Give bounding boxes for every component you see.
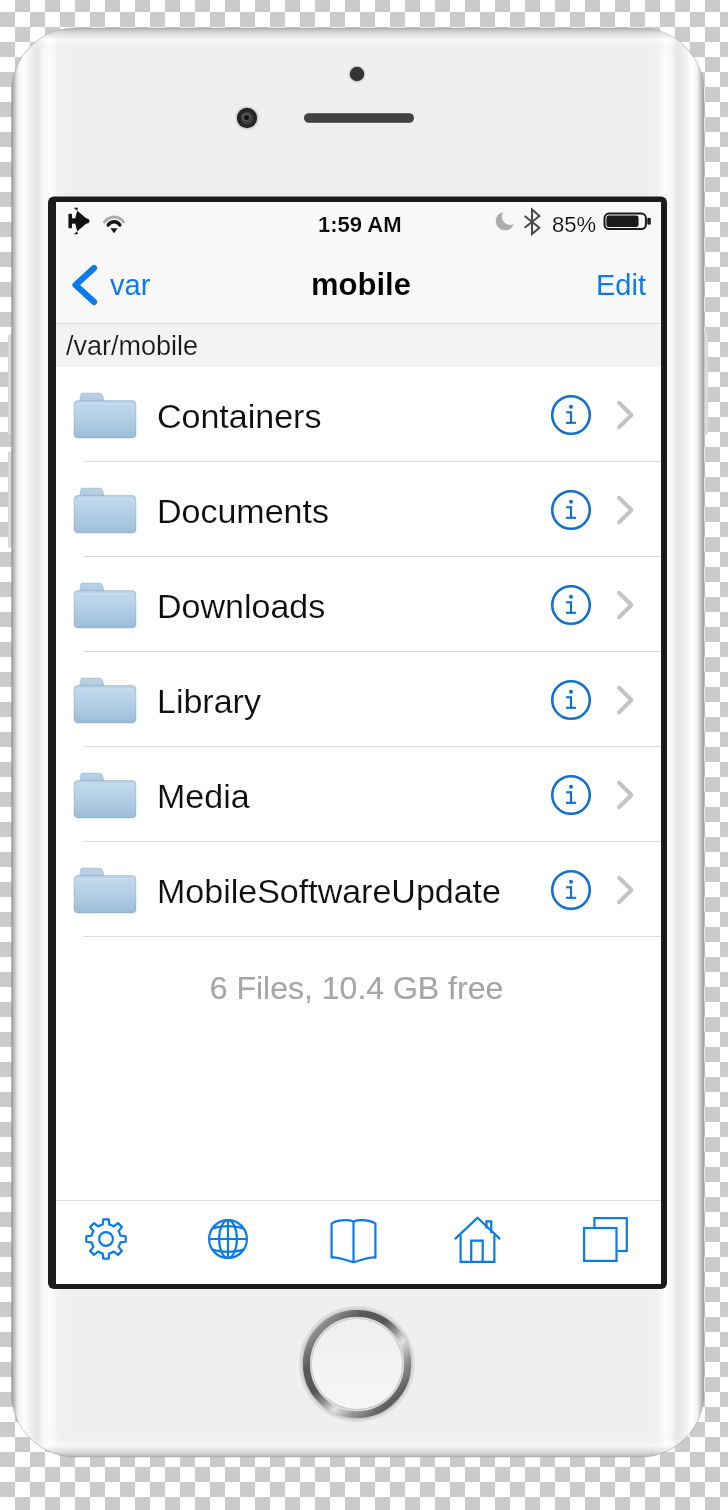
button[interactable]: Settings bbox=[74, 1200, 138, 1284]
button[interactable]: Media bbox=[56, 747, 661, 842]
button[interactable]: Info bbox=[544, 388, 598, 442]
staticText: Containers bbox=[157, 397, 322, 435]
staticText: Edit bbox=[596, 269, 646, 301]
staticText: 1:59 AM bbox=[318, 212, 402, 237]
staticText: MobileSoftwareUpdate bbox=[157, 872, 501, 910]
button[interactable]: Containers bbox=[56, 367, 661, 462]
staticText: Media bbox=[157, 777, 250, 815]
button[interactable]: Info bbox=[544, 768, 598, 822]
button[interactable]: Info bbox=[544, 863, 598, 917]
button[interactable]: Browser bbox=[196, 1200, 260, 1284]
staticText: Library bbox=[157, 682, 261, 720]
button[interactable]: Home bbox=[445, 1200, 509, 1284]
staticText: Downloads bbox=[157, 587, 326, 625]
button[interactable]: Downloads bbox=[56, 557, 661, 652]
button[interactable]: Info bbox=[544, 483, 598, 537]
button[interactable]: Bookmarks bbox=[321, 1200, 385, 1284]
button[interactable]: Info bbox=[544, 578, 598, 632]
button[interactable]: Edit bbox=[580, 250, 661, 320]
button[interactable]: MobileSoftwareUpdate bbox=[56, 842, 661, 937]
button[interactable]: Info bbox=[544, 673, 598, 727]
staticText: 6 Files, 10.4 GB free bbox=[54, 970, 659, 1006]
button[interactable]: Library bbox=[56, 652, 661, 747]
staticText: /var/mobile bbox=[66, 331, 199, 361]
staticText: Documents bbox=[157, 492, 329, 530]
button[interactable]: Documents bbox=[56, 462, 661, 557]
staticText: var bbox=[110, 269, 151, 301]
staticText: mobile bbox=[311, 267, 411, 302]
staticText: 85% bbox=[552, 212, 597, 237]
button[interactable]: var bbox=[56, 250, 165, 320]
button[interactable]: Tabs bbox=[573, 1200, 637, 1284]
